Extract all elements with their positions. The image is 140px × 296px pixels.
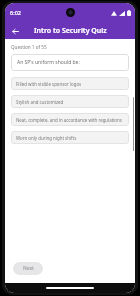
staticText: Intro to Security Quiz: [34, 26, 107, 36]
staticText: 6:02: [10, 9, 21, 16]
staticText: Next: [23, 265, 34, 272]
staticText: Question 1 of 55: [11, 44, 47, 50]
staticText: Filled with visible sponsor logos: [16, 81, 82, 87]
button[interactable]: Filled with visible sponsor logos: [11, 77, 129, 90]
staticText: Neat, complete, and in accordance with r…: [16, 117, 122, 123]
button[interactable]: Worn only during night shifts: [11, 131, 129, 144]
staticText: Worn only during night shifts: [16, 135, 77, 141]
button[interactable]: Stylish and customized: [11, 95, 129, 108]
button[interactable]: Neat, complete, and in accordance with r…: [11, 113, 129, 126]
staticText: An SP's uniform should be:: [17, 59, 80, 66]
button[interactable]: Next: [13, 262, 43, 275]
staticText: Stylish and customized: [16, 99, 64, 105]
button[interactable]: Back: [9, 25, 21, 37]
